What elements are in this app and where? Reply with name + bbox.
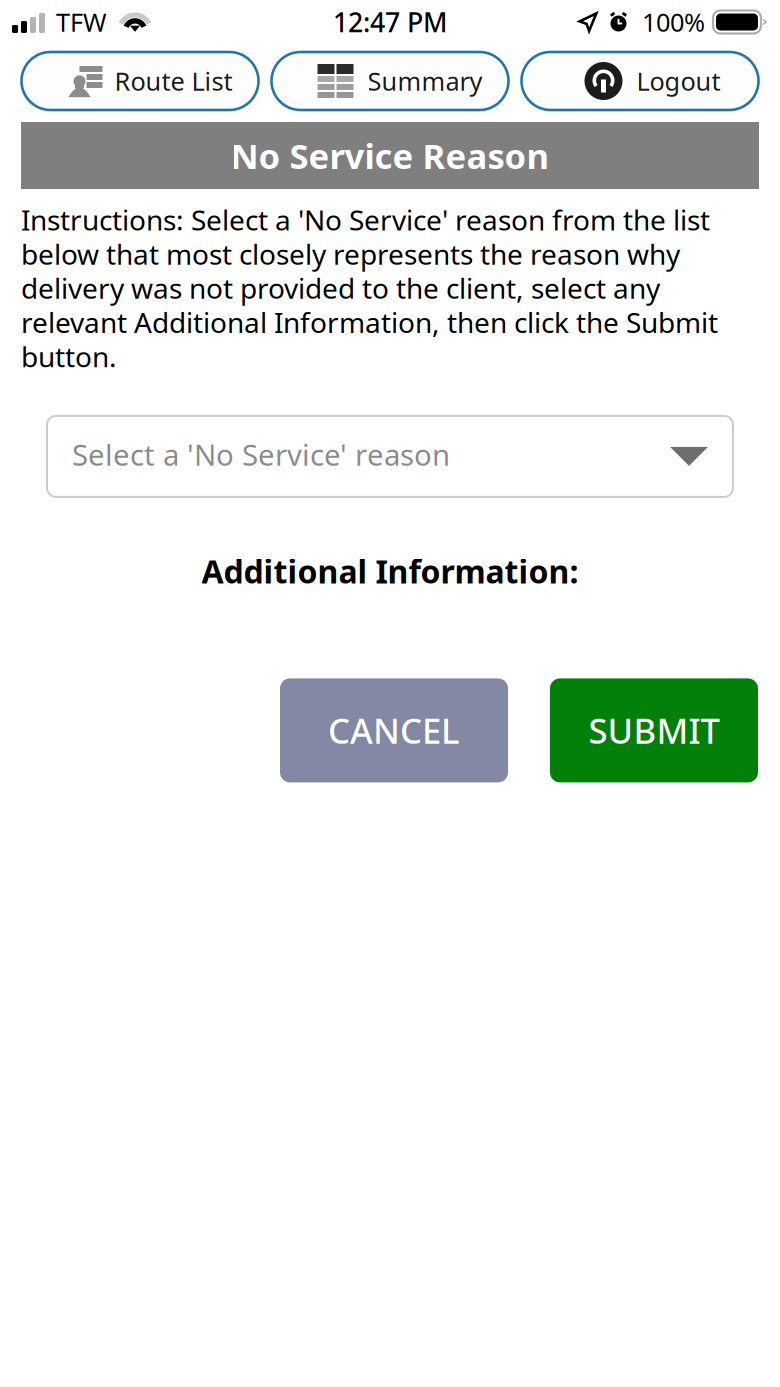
staticText: Route List (114, 64, 232, 98)
button[interactable]: Route List (21, 52, 258, 110)
button[interactable]: Logout (521, 52, 758, 110)
staticText: CANCEL (328, 707, 460, 753)
staticText: 100% (642, 5, 705, 39)
staticText: Instructions: Select a 'No Service' reas… (21, 201, 718, 375)
staticText: Logout (636, 64, 720, 98)
staticText: SUBMIT (588, 707, 719, 753)
staticText: Additional Information: (201, 550, 578, 592)
button[interactable]: SUBMIT (550, 678, 758, 782)
staticText: TFW (56, 5, 107, 39)
button[interactable]: CANCEL (280, 678, 508, 782)
staticText: Select a 'No Service' reason (72, 435, 450, 474)
staticText: No Service Reason (230, 132, 549, 178)
staticText: 12:47 PM (333, 4, 447, 40)
staticText: Summary (367, 64, 482, 98)
button[interactable]: Summary (271, 52, 508, 110)
